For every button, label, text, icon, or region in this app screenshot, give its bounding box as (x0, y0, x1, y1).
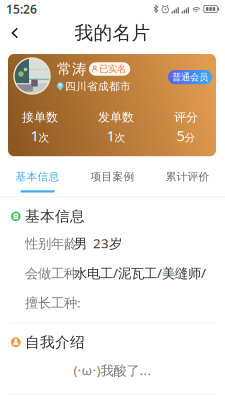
staticText: 男 23岁 (74, 234, 122, 252)
staticText: 常涛 (57, 60, 87, 78)
staticText: 四川省成都市 (65, 80, 131, 93)
staticText: 1 (30, 126, 38, 145)
button[interactable]: 项目案例 (75, 161, 150, 196)
staticText: 累计评价 (165, 170, 209, 183)
staticText: 发单数 (98, 110, 134, 125)
staticText: 性别年龄: (25, 234, 81, 252)
staticText: (·ω·)我酸了... (73, 361, 151, 379)
staticText: 自我介绍 (25, 333, 85, 351)
staticText: 接单数 (22, 110, 58, 125)
staticText: 擅长工种: (25, 294, 81, 311)
staticText: 已实名 (99, 63, 126, 75)
staticText: 会做工种: (25, 264, 81, 282)
staticText: 次 (114, 131, 125, 144)
staticText: 基本信息 (25, 207, 85, 225)
button[interactable]: 普通会员 (168, 70, 212, 84)
staticText: 分 (184, 131, 195, 144)
staticText: 15:26 (6, 1, 37, 17)
staticText: 项目案例 (90, 170, 134, 183)
staticText: 1 (106, 126, 114, 145)
staticText: 普通会员 (172, 71, 208, 83)
staticText: 5 (176, 126, 184, 145)
staticText: 我的名片 (74, 21, 150, 44)
button[interactable]: 累计评价 (150, 161, 225, 196)
button[interactable]: 基本信息 (0, 161, 75, 196)
staticText: 水电工/泥瓦工/美缝师/ (74, 264, 206, 282)
button[interactable]: Back (2, 20, 28, 46)
staticText: 基本信息 (15, 170, 59, 183)
staticText: 评分 (174, 110, 198, 125)
staticText: 次 (38, 131, 49, 144)
